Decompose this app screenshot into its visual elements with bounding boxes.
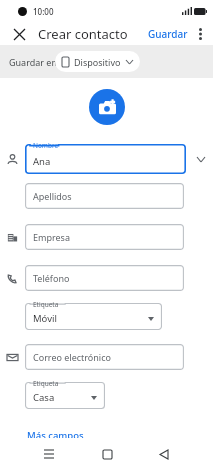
button[interactable]: Atrás <box>153 443 175 465</box>
staticText: Guardar en <box>9 56 57 68</box>
staticText: Apellidos <box>33 190 72 202</box>
staticText: Empresa <box>33 231 70 243</box>
button[interactable]: Dispositivo <box>55 51 140 72</box>
staticText: Etiqueta <box>33 379 59 388</box>
button[interactable]: Empresa <box>25 224 184 250</box>
button[interactable]: Apellidos <box>25 183 184 209</box>
button[interactable]: Más opciones <box>191 25 209 43</box>
staticText: Crear contacto <box>38 25 128 43</box>
staticText: Ana <box>33 155 51 168</box>
button[interactable]: Recientes <box>38 443 60 465</box>
button[interactable]: Inicio <box>96 443 118 465</box>
button[interactable]: Etiqueta <box>25 382 105 409</box>
staticText: Correo electrónico <box>33 351 111 363</box>
staticText: 10:00 <box>33 6 54 17</box>
button[interactable]: Añadir foto <box>89 89 125 125</box>
staticText: Teléfono <box>33 272 70 284</box>
button[interactable]: Más campos <box>25 426 86 445</box>
staticText: Etiqueta <box>33 300 59 309</box>
staticText: Más campos <box>27 429 84 442</box>
button[interactable]: Nombre <box>25 144 186 174</box>
button[interactable]: Teléfono <box>25 265 184 291</box>
staticText: Guardar <box>148 27 188 41</box>
staticText: Nombre <box>33 141 59 150</box>
button[interactable]: Cerrar <box>8 23 30 45</box>
button[interactable]: Etiqueta <box>25 303 162 330</box>
button[interactable]: Correo electrónico <box>25 344 184 370</box>
staticText: Casa <box>33 391 55 404</box>
staticText: Móvil <box>33 312 57 325</box>
button[interactable]: Guardar <box>145 24 191 44</box>
staticText: Dispositivo <box>74 56 121 68</box>
button[interactable]: Expandir nombre <box>188 140 213 178</box>
